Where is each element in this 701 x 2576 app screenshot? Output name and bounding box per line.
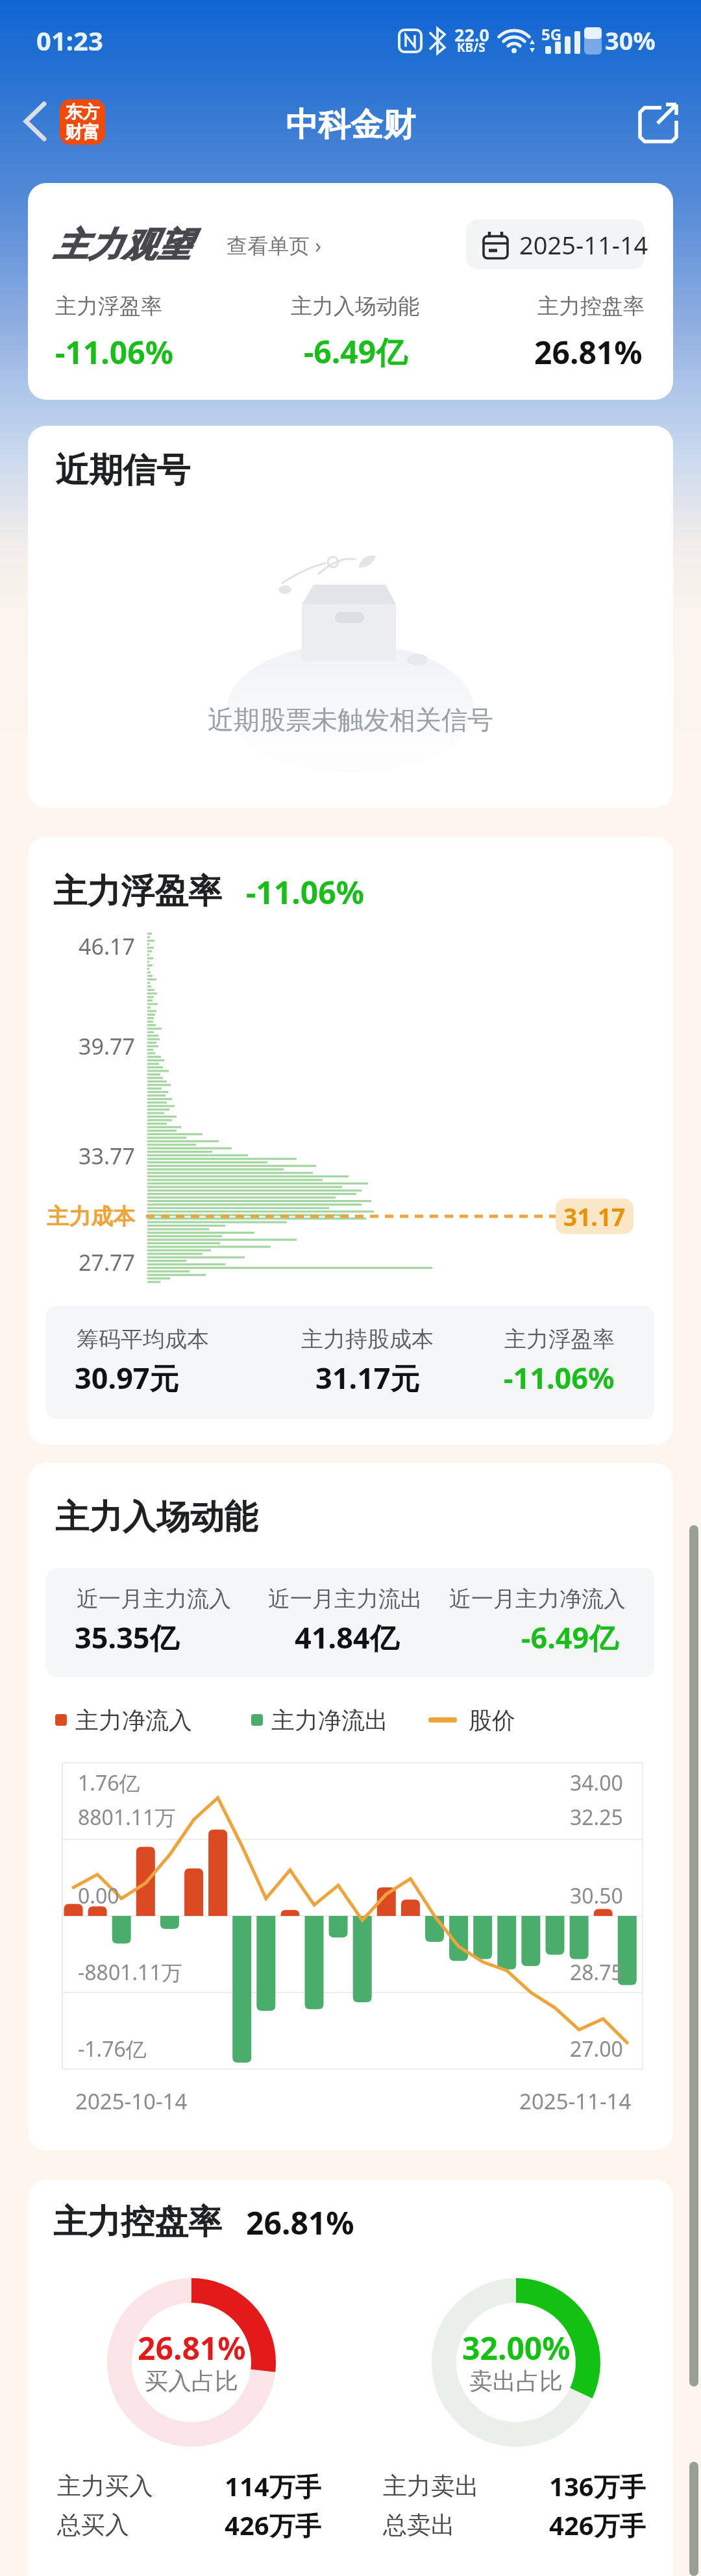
staticText: 30.97元 (75, 1358, 179, 1397)
staticText: 8801.11万 (78, 1803, 176, 1832)
staticText: 近期信号 (55, 449, 190, 492)
staticText: 主力浮盈率 (504, 1325, 615, 1353)
staticText: 近期股票未触发相关信号 (208, 704, 493, 736)
staticText: 卖出占比 (469, 2366, 563, 2396)
staticText: 46.17 (79, 931, 135, 961)
staticText: KB/S (457, 39, 486, 56)
staticText: 01:23 (36, 23, 103, 58)
staticText: 总买入 (57, 2510, 129, 2540)
staticText: 近一月主力净流入 (449, 1585, 626, 1613)
staticText: -1.76亿 (78, 2035, 147, 2063)
staticText: 筹码平均成本 (77, 1325, 209, 1353)
staticText: 买入占比 (145, 2366, 238, 2396)
staticText: 26.81% (138, 2327, 246, 2369)
staticText: -11.06% (55, 331, 173, 373)
staticText: 27.77 (79, 1247, 135, 1277)
staticText: -6.49亿 (521, 1617, 619, 1657)
staticText: -6.49亿 (304, 330, 408, 373)
staticText: 30.50 (570, 1882, 623, 1910)
button[interactable]: 东方 财富 (60, 99, 105, 145)
staticText: 34.00 (570, 1769, 623, 1797)
staticText: 35.35亿 (75, 1617, 179, 1657)
staticText: 2025-10-14 (75, 2087, 188, 2116)
button[interactable] (466, 219, 645, 269)
staticText: 32.25 (570, 1803, 623, 1832)
staticText: 主力控盘率 (537, 293, 645, 320)
staticText: 426万手 (225, 2507, 321, 2543)
staticText: 主力入场动能 (291, 293, 419, 320)
staticText: 32.00% (462, 2327, 571, 2369)
staticText: -11.06% (246, 871, 364, 913)
staticText: 总卖出 (383, 2510, 455, 2540)
staticText: 主力控盘率 (53, 2201, 222, 2244)
staticText: 28.75 (570, 1958, 623, 1987)
staticText: 主力入场动能 (55, 1496, 258, 1539)
staticText: 主力买入 (57, 2471, 153, 2501)
staticText: -8801.11万 (78, 1958, 182, 1987)
staticText: 0.00 (78, 1882, 119, 1910)
staticText: 136万手 (549, 2468, 646, 2504)
button[interactable] (22, 103, 48, 141)
staticText: 查看单页 › (227, 231, 322, 260)
staticText: 26.81% (246, 2202, 354, 2244)
staticText: 主力浮盈率 (53, 870, 222, 913)
button[interactable] (227, 225, 343, 266)
staticText: 2025-11-14 (519, 2087, 632, 2116)
button[interactable] (638, 101, 678, 143)
staticText: 426万手 (549, 2507, 646, 2543)
staticText: 41.84亿 (295, 1617, 399, 1657)
staticText: 39.77 (79, 1031, 135, 1061)
staticText: -11.06% (504, 1358, 615, 1397)
staticText: 5G (541, 23, 562, 45)
staticText: 2025-11-14 (519, 228, 648, 262)
staticText: 主力净流入 (75, 1706, 192, 1735)
staticText: 中科金财 (286, 104, 415, 145)
staticText: 33.77 (79, 1141, 135, 1171)
staticText: 主力成本 (47, 1203, 135, 1231)
staticText: 近一月主力流入 (77, 1585, 231, 1613)
staticText: 31.17元 (315, 1358, 420, 1397)
staticText: 主力净流出 (271, 1706, 388, 1735)
staticText: 主力浮盈率 (55, 293, 162, 320)
staticText: 26.81% (534, 331, 643, 373)
staticText: 主力观望 (53, 224, 191, 267)
staticText: 31.17 (563, 1200, 626, 1233)
staticText: 1.76亿 (78, 1769, 140, 1797)
staticText: 主力持股成本 (301, 1325, 434, 1353)
staticText: 27.00 (570, 2035, 623, 2063)
staticText: 22.0 (454, 23, 489, 47)
staticText: 股价 (469, 1706, 515, 1735)
staticText: 东方 财富 (65, 101, 100, 143)
staticText: 30% (605, 23, 656, 57)
staticText: 主力卖出 (383, 2471, 479, 2501)
staticText: 114万手 (225, 2468, 321, 2504)
staticText: 近一月主力流出 (268, 1585, 423, 1613)
